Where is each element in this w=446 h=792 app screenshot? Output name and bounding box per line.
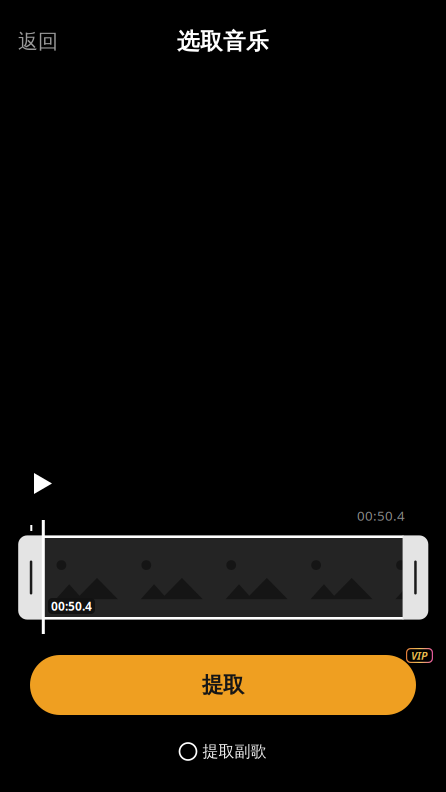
staticText: VIP: [411, 648, 428, 663]
button[interactable]: 提取: [30, 655, 416, 715]
staticText: 00:50.4: [51, 598, 92, 614]
button[interactable]: Play: [23, 462, 63, 505]
staticText: 提取副歌: [202, 742, 266, 761]
button[interactable]: VIP: [406, 648, 433, 663]
staticText: 选取音乐: [177, 28, 269, 55]
staticText: 提取: [202, 672, 244, 698]
staticText: 00:50.4: [357, 507, 405, 524]
staticText: 返回: [18, 29, 58, 54]
button[interactable]: 返回: [0, 19, 76, 63]
button[interactable]: 提取副歌: [0, 734, 446, 768]
